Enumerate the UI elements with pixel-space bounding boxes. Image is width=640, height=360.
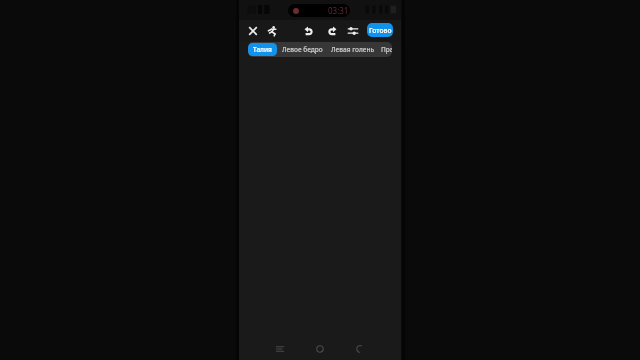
- button[interactable]: Левая голень: [331, 43, 375, 56]
- staticText: Талия: [253, 45, 272, 54]
- staticText: Левое бедро: [282, 45, 323, 54]
- button[interactable]: Талия: [248, 43, 277, 56]
- button[interactable]: Adjust: [344, 22, 362, 40]
- staticText: 03:31: [328, 5, 349, 16]
- button[interactable]: Recent apps: [270, 339, 290, 359]
- button[interactable]: Правое: [381, 43, 392, 56]
- button[interactable]: Pose: [263, 22, 281, 40]
- staticText: Готово: [369, 26, 392, 35]
- button[interactable]: Close: [244, 22, 262, 40]
- staticText: Правое: [381, 45, 392, 54]
- button[interactable]: Redo: [323, 22, 341, 40]
- staticText: Левая голень: [331, 45, 375, 54]
- button[interactable]: Undo: [300, 22, 318, 40]
- button[interactable]: Home: [310, 339, 330, 359]
- button[interactable]: Готово: [367, 23, 393, 37]
- button[interactable]: Левое бедро: [282, 43, 323, 56]
- button[interactable]: Back: [350, 339, 370, 359]
